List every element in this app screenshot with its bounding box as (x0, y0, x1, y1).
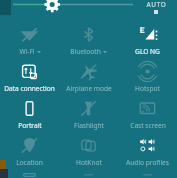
button[interactable]: Bluetooth (59, 21, 118, 58)
button[interactable]: Location (0, 132, 59, 169)
button[interactable]: Hotspot (118, 58, 177, 95)
button[interactable]: Portrait (0, 95, 59, 132)
staticText: HotKnot (76, 158, 102, 167)
staticText: Wi-Fi (19, 47, 35, 56)
button[interactable]: HotKnot (59, 132, 118, 169)
staticText: Cast screen (130, 121, 166, 130)
staticText: Portrait (18, 121, 42, 130)
button[interactable]: Toggle (59, 169, 118, 178)
staticText: Data connection (4, 84, 55, 93)
button[interactable]: Airplane mode (59, 58, 118, 95)
staticText: AUTO (146, 0, 167, 9)
staticText: Airplane mode (66, 84, 112, 93)
button[interactable]: GLO NG (118, 21, 177, 58)
button[interactable]: Flashlight (59, 95, 118, 132)
button[interactable] (11, 0, 134, 15)
staticText: Bluetooth (70, 47, 101, 56)
button[interactable]: Data connection (0, 58, 59, 95)
staticText: Location (16, 158, 43, 167)
button[interactable]: Cast screen (118, 95, 177, 132)
button[interactable]: Wi-Fi (0, 21, 59, 58)
button[interactable]: Toggle (0, 169, 59, 178)
staticText: GLO NG (135, 47, 160, 56)
button[interactable]: Audio profiles (118, 132, 177, 169)
staticText: Audio profiles (126, 158, 169, 167)
button[interactable]: Toggle (118, 169, 177, 178)
button[interactable]: AUTO (135, 0, 177, 14)
staticText: Hotspot (135, 84, 160, 93)
staticText: Flashlight (74, 121, 104, 130)
